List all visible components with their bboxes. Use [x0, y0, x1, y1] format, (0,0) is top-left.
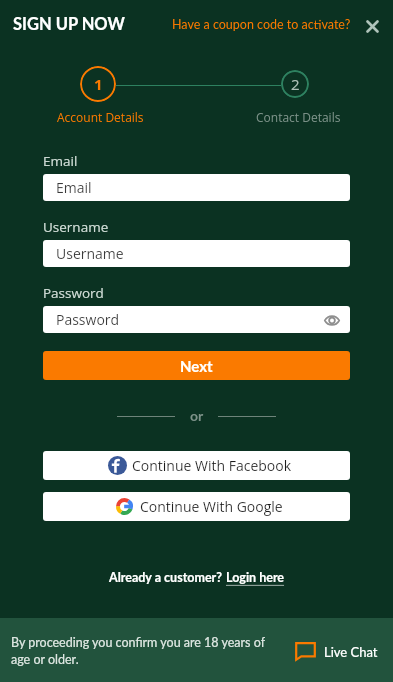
staticText: Continue With Google — [140, 497, 283, 516]
button[interactable]: Continue With Facebook — [43, 451, 350, 480]
staticText: SIGN UP NOW — [13, 14, 125, 34]
staticText: Email — [56, 178, 92, 197]
button[interactable]: Have a coupon code to activate? — [172, 17, 351, 32]
staticText: Have a coupon code to activate? — [172, 17, 351, 32]
staticText: Continue With Facebook — [132, 456, 292, 475]
staticText: Password — [43, 284, 104, 302]
staticText: Login here — [226, 570, 285, 585]
button[interactable]: SIGN UP NOW — [13, 14, 125, 34]
staticText: Already a customer? — [109, 570, 226, 585]
staticText: or — [190, 407, 204, 424]
button[interactable]: Next — [43, 351, 350, 380]
staticText: Next — [180, 357, 213, 375]
button[interactable]: 1 — [80, 66, 116, 102]
button[interactable]: Close — [359, 13, 385, 39]
button[interactable]: Continue With Google — [43, 492, 350, 521]
staticText: Contact Details — [256, 109, 341, 125]
staticText: 2 — [291, 74, 300, 94]
staticText: Email — [43, 152, 78, 170]
button[interactable]: 2 — [281, 70, 309, 98]
other: Show password — [323, 313, 341, 327]
button[interactable]: Password — [43, 306, 350, 333]
button[interactable]: Email — [43, 174, 350, 201]
staticText: Account Details — [57, 109, 144, 125]
staticText: Live Chat — [324, 644, 378, 660]
button[interactable]: Username — [43, 240, 350, 267]
staticText: Password — [56, 310, 120, 329]
staticText: 1 — [94, 74, 103, 94]
button[interactable]: Live Chat — [291, 638, 382, 665]
button[interactable]: Already a customer? — [109, 570, 285, 585]
staticText: By proceeding you confirm you are 18 yea… — [11, 635, 277, 667]
staticText: Username — [56, 244, 124, 263]
staticText: Username — [43, 218, 109, 236]
